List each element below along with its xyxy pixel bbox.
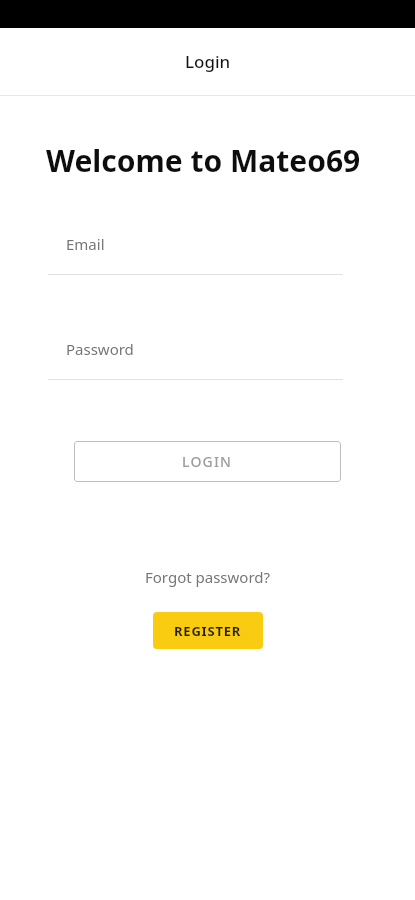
button[interactable]: REGISTER [153,612,263,649]
button[interactable]: Forgot password? [135,563,281,591]
staticText: Forgot password? [145,567,271,587]
staticText: Password [66,339,134,359]
staticText: REGISTER [174,622,242,640]
staticText: Login [185,50,231,73]
staticText: Welcome to Mateo69 [46,140,361,181]
button[interactable]: Password [48,334,343,380]
button[interactable]: Email [48,229,343,275]
button[interactable]: LOGIN [74,441,341,482]
staticText: LOGIN [182,452,233,471]
staticText: Email [66,234,105,254]
